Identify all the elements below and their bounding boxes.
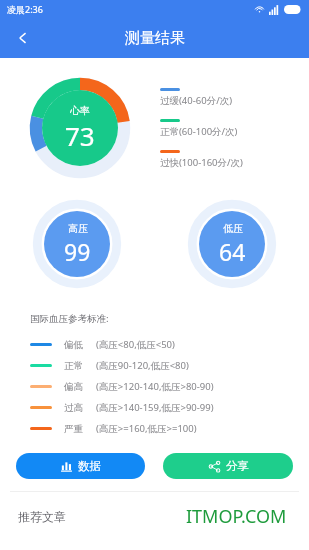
staticText: 过缓(40-60分/次) (160, 94, 233, 107)
staticText: 分享 (226, 459, 249, 473)
staticText: 严重 (64, 423, 96, 435)
staticText: 过高 (64, 402, 96, 414)
staticText: 高压 (68, 222, 88, 235)
staticText: 测量结果 (125, 29, 185, 48)
button[interactable]: 数据 (16, 453, 145, 479)
staticText: 64 (219, 236, 246, 267)
staticText: ITMOP.COM (186, 504, 287, 529)
staticText: 偏低 (64, 339, 96, 351)
staticText: 偏高 (64, 381, 96, 393)
staticText: 正常 (64, 360, 96, 372)
staticText: (高压>=160,低压>=100) (96, 422, 197, 435)
staticText: (高压90-120,低压<80) (96, 359, 189, 372)
staticText: 过快(100-160分/次) (160, 156, 243, 169)
button[interactable]: Back (6, 21, 40, 55)
staticText: 数据 (78, 459, 101, 473)
staticText: 73 (65, 118, 95, 153)
staticText: 凌晨2:36 (7, 3, 43, 15)
staticText: (高压>120-140,低压>80-90) (96, 380, 214, 393)
staticText: 99 (64, 236, 91, 267)
staticText: 心率 (70, 104, 90, 117)
staticText: (高压>140-159,低压>90-99) (96, 401, 214, 414)
staticText: (高压<80,低压<50) (96, 338, 175, 351)
staticText: 国际血压参考标准: (30, 312, 109, 325)
button[interactable]: 分享 (163, 453, 293, 479)
staticText: 正常(60-100分/次) (160, 125, 238, 138)
staticText: 推荐文章 (18, 509, 66, 524)
staticText: 低压 (223, 222, 243, 235)
